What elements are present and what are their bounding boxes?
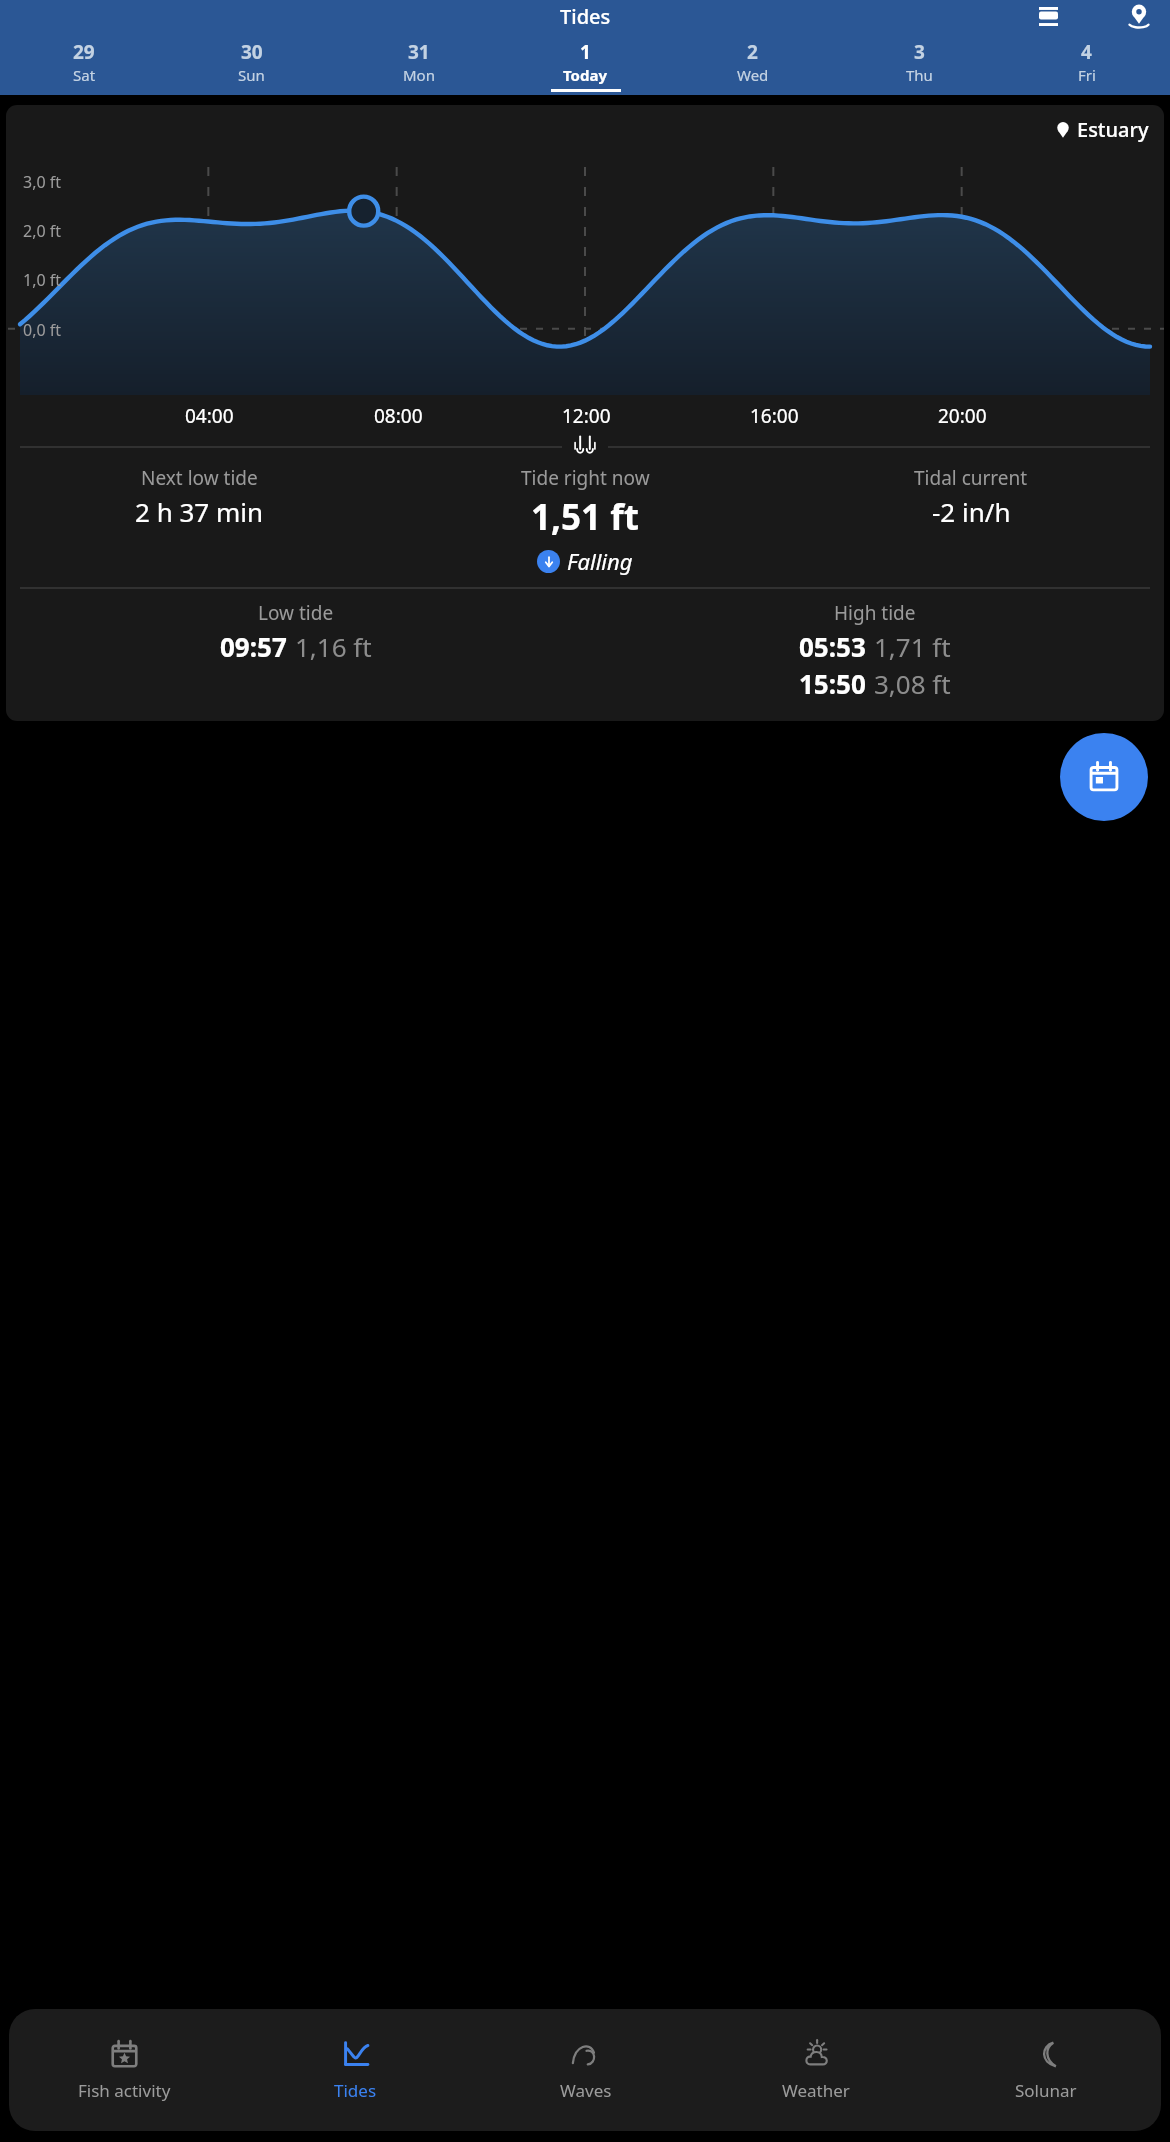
staticText: Weather <box>782 2079 850 2102</box>
staticText: 08:00 <box>374 403 423 429</box>
staticText: 29 <box>73 39 95 65</box>
staticText: 1,16 ft <box>295 629 372 664</box>
staticText: 3,0 ft <box>23 171 62 193</box>
staticText: 3 <box>914 39 925 65</box>
staticText: 2 <box>747 39 758 65</box>
staticText: Sun <box>238 65 265 85</box>
staticText: Mon <box>403 65 435 85</box>
button[interactable]: Weather <box>701 2009 931 2131</box>
button[interactable]: Tide table <box>1026 0 1070 33</box>
staticText: 05:53 <box>799 629 866 664</box>
staticText: 1,51 ft <box>531 493 639 541</box>
staticText: Estuary <box>1077 116 1149 143</box>
button[interactable]: 30 <box>168 39 335 92</box>
staticText: 30 <box>241 39 263 65</box>
button[interactable]: Change location <box>1116 0 1162 33</box>
staticText: -2 in/h <box>932 494 1011 529</box>
staticText: Wed <box>737 65 769 85</box>
button[interactable]: Solunar <box>931 2009 1161 2131</box>
staticText: Today <box>563 65 608 85</box>
staticText: Falling <box>567 546 633 576</box>
staticText: Tide right now <box>521 465 650 491</box>
button[interactable]: 2 <box>669 39 836 92</box>
staticText: Sat <box>73 65 96 85</box>
staticText: Fish activity <box>78 2079 171 2102</box>
staticText: 04:00 <box>185 403 234 429</box>
staticText: 16:00 <box>750 403 799 429</box>
staticText: Tidal current <box>914 465 1028 491</box>
staticText: Thu <box>906 65 933 85</box>
staticText: 12:00 <box>562 403 611 429</box>
button[interactable]: Open calendar <box>1060 733 1148 821</box>
staticText: 2,0 ft <box>23 220 62 242</box>
staticText: 1 <box>580 39 591 65</box>
button[interactable]: 4 <box>1003 39 1170 92</box>
button[interactable]: Tides <box>240 2009 471 2131</box>
staticText: 0,0 ft <box>23 319 62 341</box>
staticText: Solunar <box>1015 2079 1077 2102</box>
staticText: Low tide <box>258 600 334 626</box>
staticText: 09:57 <box>220 629 287 664</box>
button[interactable]: 29 <box>0 39 168 92</box>
staticText: Next low tide <box>141 465 258 491</box>
staticText: Tides <box>334 2079 377 2102</box>
staticText: 31 <box>408 39 430 65</box>
staticText: 4 <box>1081 39 1092 65</box>
staticText: 20:00 <box>938 403 987 429</box>
button[interactable]: Fish activity <box>9 2009 240 2131</box>
staticText: 15:50 <box>799 666 866 701</box>
staticText: 2 h 37 min <box>135 494 264 529</box>
staticText: Tides <box>560 3 611 30</box>
staticText: 3,08 ft <box>874 666 951 701</box>
staticText: Waves <box>560 2079 612 2102</box>
staticText: Fri <box>1078 65 1096 85</box>
staticText: 1,71 ft <box>874 629 951 664</box>
button[interactable]: Waves <box>471 2009 701 2131</box>
button[interactable]: 1 <box>502 39 669 92</box>
staticText: High tide <box>834 600 916 626</box>
button[interactable]: 31 <box>335 39 502 92</box>
staticText: 1,0 ft <box>23 269 62 291</box>
button[interactable]: 3 <box>836 39 1003 92</box>
